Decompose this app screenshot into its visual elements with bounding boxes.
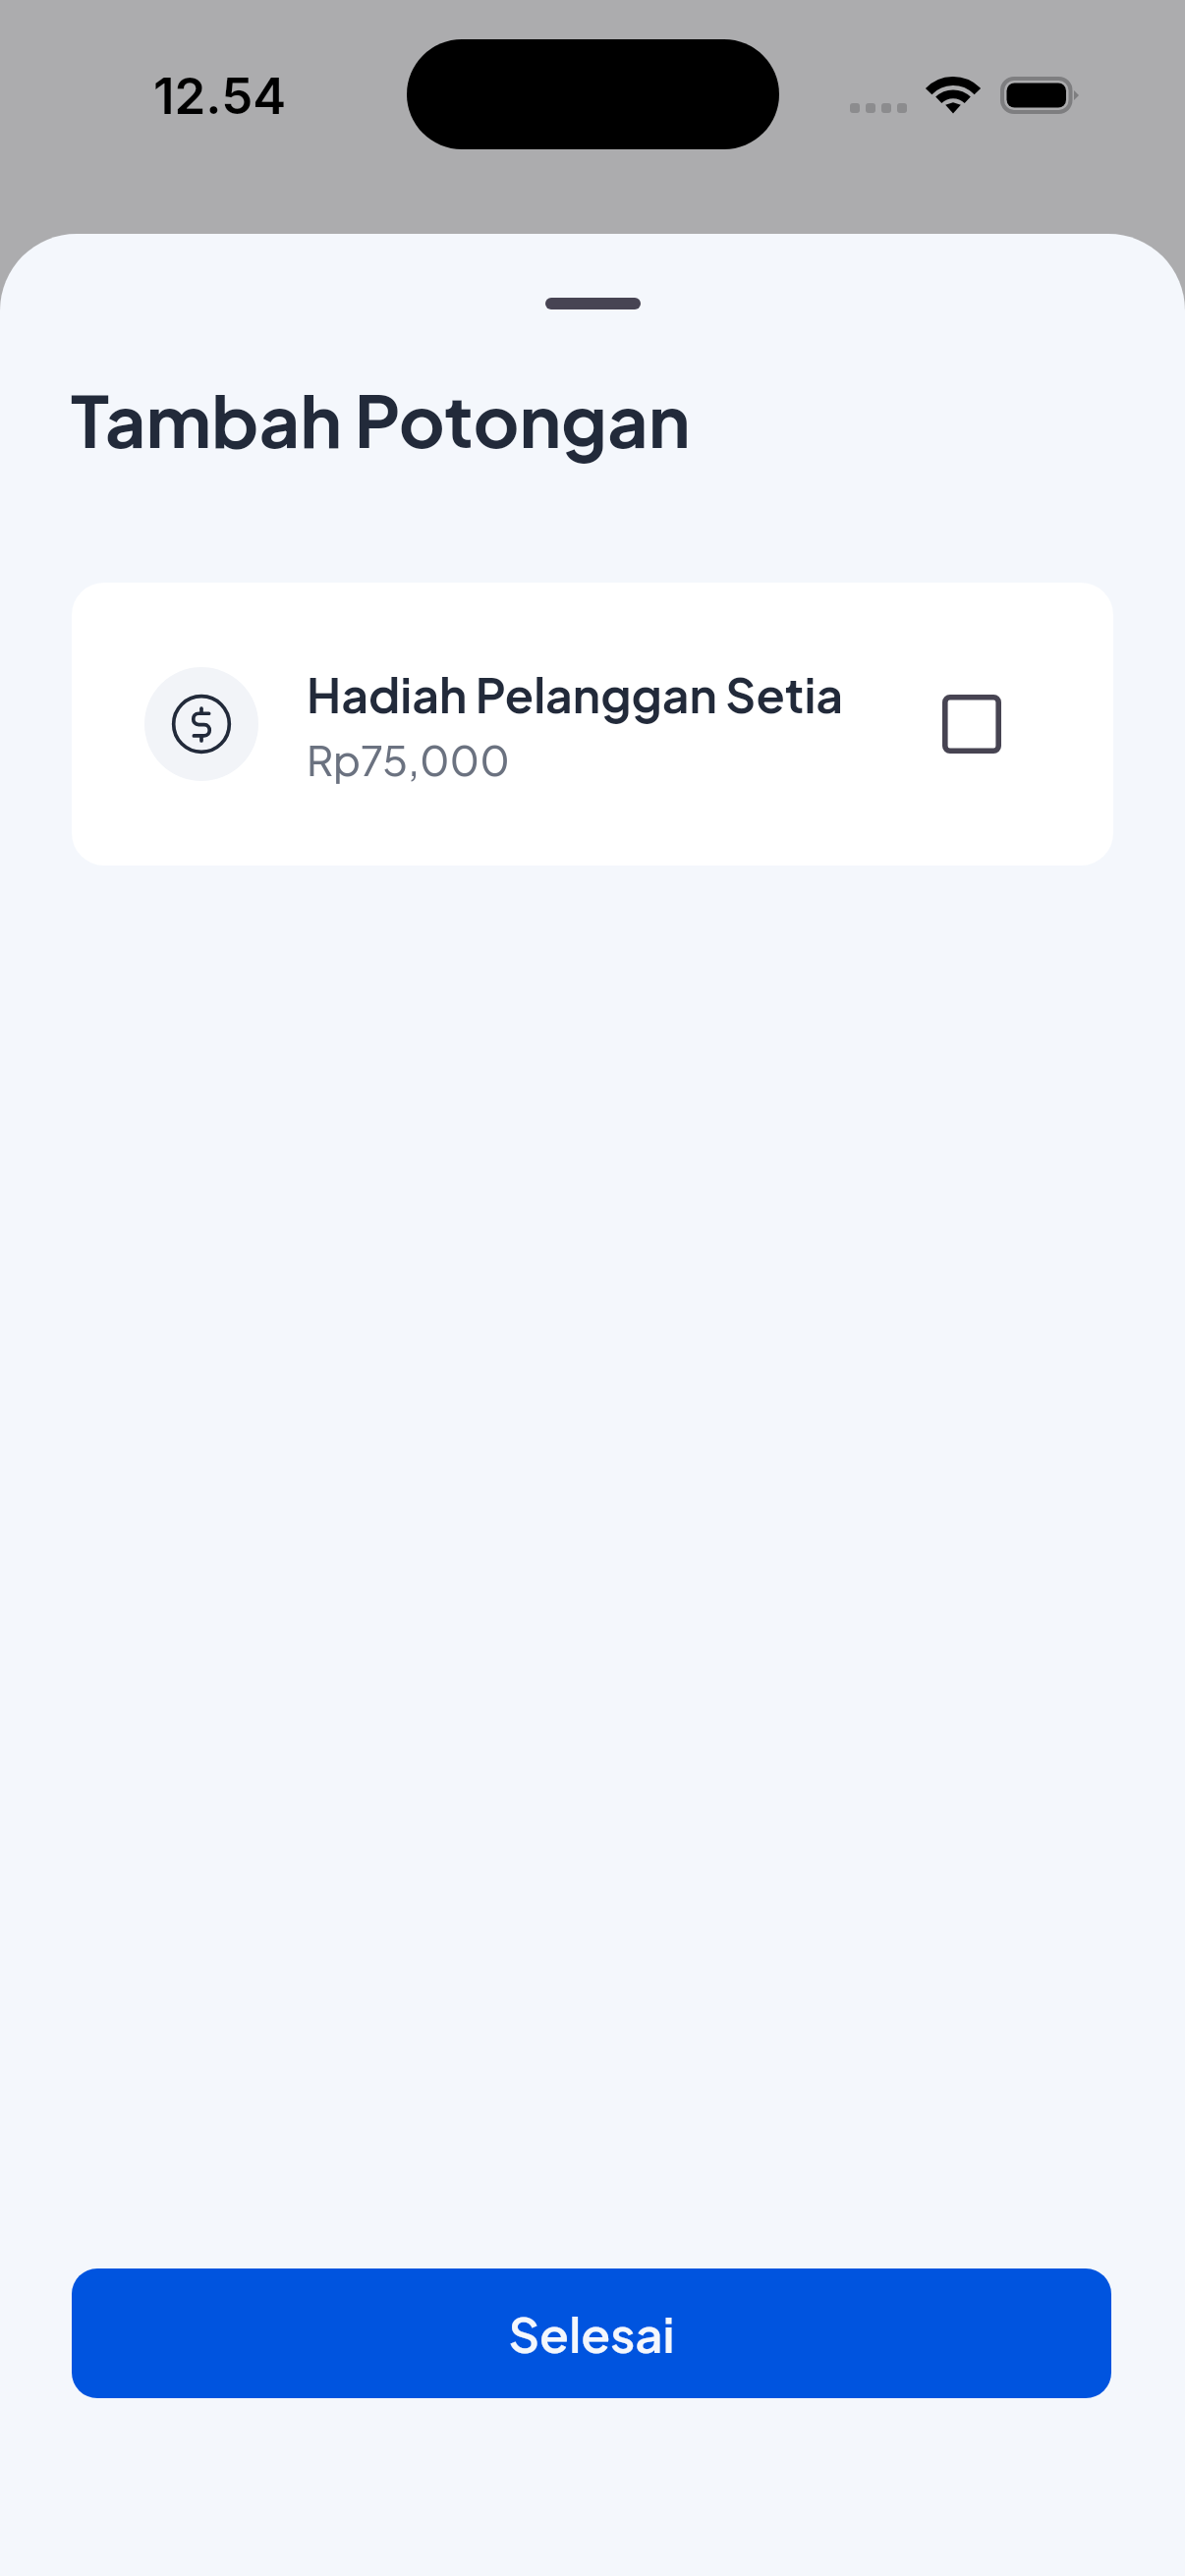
staticText: Hadiah Pelanggan Setia <box>307 664 844 723</box>
staticText: 12.54 <box>153 66 287 127</box>
staticText: Selesai <box>508 2303 675 2364</box>
button[interactable]: Selesai <box>72 2268 1111 2398</box>
button[interactable]: Hadiah Pelanggan Setia <box>72 583 1113 866</box>
button[interactable]: Select Hadiah Pelanggan Setia <box>942 695 1001 754</box>
staticText: Tambah Potongan <box>71 374 691 464</box>
staticText: Rp75,000 <box>307 733 510 785</box>
